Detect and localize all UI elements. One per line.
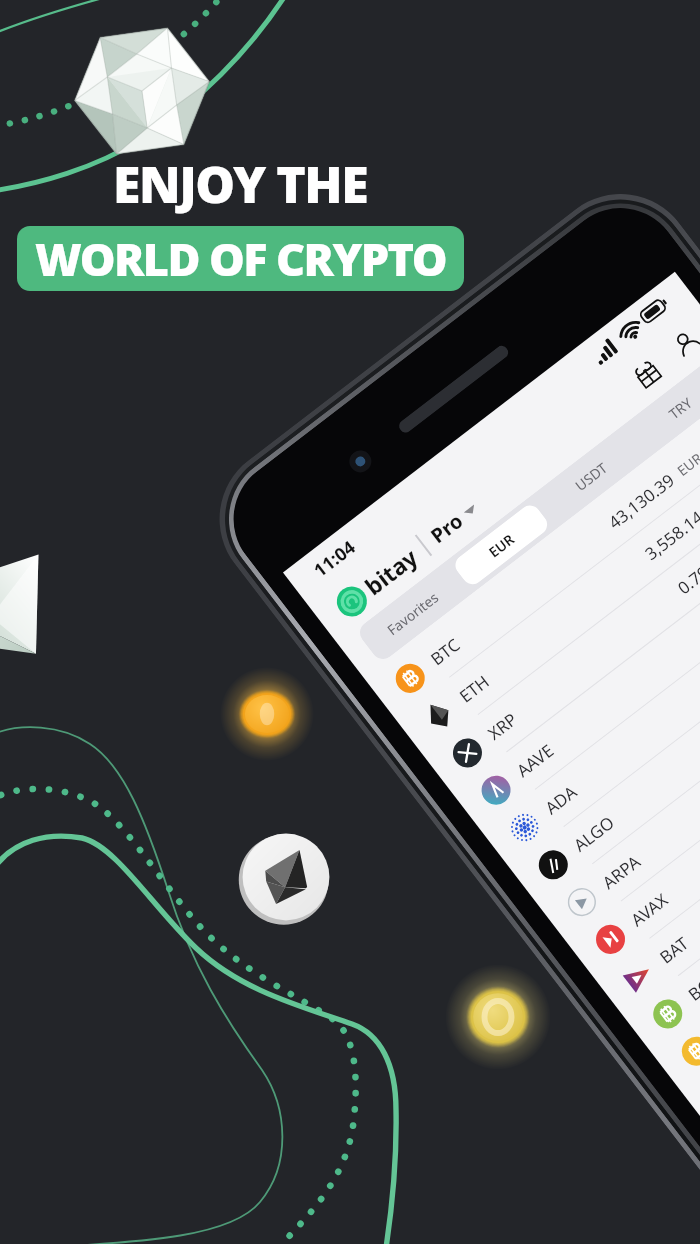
- other: Expand: [461, 501, 479, 519]
- staticText: bitay: [358, 541, 424, 601]
- staticText: TRY: [665, 393, 696, 423]
- button[interactable]: bitay: [330, 541, 424, 622]
- button[interactable]: ARPA: [539, 605, 700, 942]
- button[interactable]: WORLD OF CRYPTO: [17, 226, 464, 291]
- button[interactable]: USDT: [540, 432, 641, 520]
- button[interactable]: BNB: [653, 754, 700, 1091]
- button[interactable]: XRP: [424, 456, 700, 793]
- staticText: AAVE: [512, 739, 558, 782]
- staticText: ENJOY THE: [113, 150, 368, 218]
- staticText: BCH: [683, 966, 700, 1006]
- button[interactable]: BCH: [624, 717, 700, 1054]
- button[interactable]: AVAX: [567, 642, 700, 979]
- staticText: 0.79212: [673, 543, 700, 599]
- button[interactable]: BTC: [367, 381, 700, 718]
- staticText: ETH: [454, 670, 494, 707]
- staticText: BTC: [426, 633, 464, 670]
- button[interactable]: BTG: [682, 791, 700, 1129]
- button[interactable]: ADA: [481, 530, 700, 868]
- staticText: USDT: [571, 458, 611, 495]
- button[interactable]: Rewards: [628, 354, 667, 393]
- staticText: Favorites: [383, 588, 442, 639]
- staticText: 43,130.39: [604, 468, 679, 534]
- staticText: EUR: [673, 448, 700, 480]
- staticText: ADA: [540, 780, 581, 819]
- staticText: 3,558.14: [640, 505, 700, 565]
- staticText: ARPA: [597, 850, 645, 894]
- button[interactable]: Pro: [425, 495, 484, 549]
- button[interactable]: ETH: [396, 418, 700, 756]
- button[interactable]: Profile: [667, 324, 700, 363]
- staticText: XRP: [483, 708, 522, 745]
- button[interactable]: BAT: [596, 679, 700, 1017]
- staticText: 11:04: [308, 534, 361, 583]
- button[interactable]: EUR: [451, 501, 551, 589]
- button[interactable]: ALGO: [510, 568, 700, 905]
- staticText: ALGO: [569, 810, 619, 857]
- staticText: EUR: [485, 529, 518, 561]
- button[interactable]: AAVE: [453, 493, 700, 830]
- button[interactable]: TRY: [630, 363, 700, 452]
- button[interactable]: ENJOY THE: [113, 150, 368, 218]
- staticText: BAT: [655, 931, 693, 968]
- staticText: Pro: [425, 507, 468, 549]
- staticText: WORLD OF CRYPTO: [35, 228, 446, 289]
- staticText: AVAX: [626, 888, 673, 931]
- button[interactable]: Favorites: [362, 569, 463, 657]
